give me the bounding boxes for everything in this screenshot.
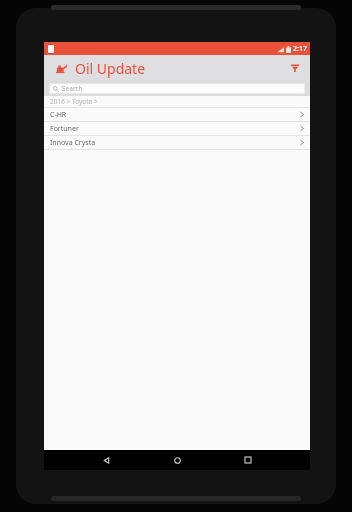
staticText: Search [62, 84, 83, 93]
staticText: Innova Crysta [50, 138, 96, 148]
button[interactable]: C-HR [44, 108, 310, 121]
button[interactable]: Fortuner [44, 122, 310, 135]
staticText: Fortuner [50, 124, 79, 134]
button[interactable]: Search [49, 83, 305, 94]
staticText: Oil Update [75, 59, 146, 78]
button[interactable]: Recents [238, 450, 258, 470]
button[interactable]: Innova Crysta [44, 136, 310, 149]
button[interactable]: Filter [287, 60, 303, 76]
staticText: 2:17 [293, 44, 307, 54]
button[interactable]: Back [96, 450, 116, 470]
staticText: 2016 > Toyota > [50, 97, 98, 106]
staticText: C-HR [50, 110, 67, 120]
button[interactable]: Home [167, 450, 187, 470]
